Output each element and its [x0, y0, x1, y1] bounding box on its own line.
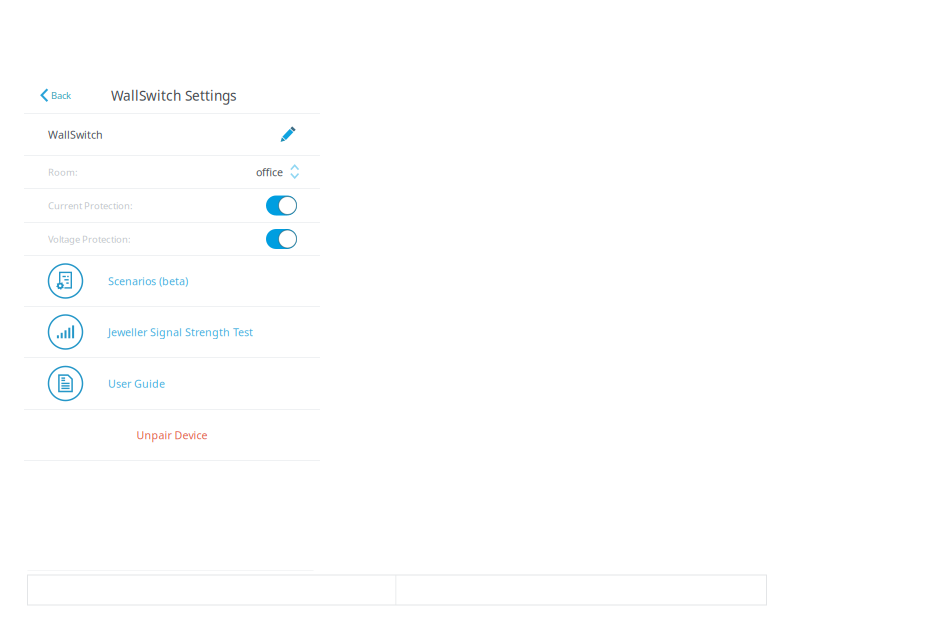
staticText: Scenarios (beta)	[108, 274, 188, 288]
button[interactable]: Room:	[24, 156, 320, 188]
staticText: Voltage Protection:	[48, 233, 131, 245]
staticText: Back	[51, 89, 71, 102]
button[interactable]: Back	[24, 78, 77, 112]
button[interactable]: Voltage Protection:	[24, 223, 320, 255]
staticText: Jeweller Signal Strength Test	[108, 325, 253, 339]
staticText: WallSwitch Settings	[111, 86, 237, 105]
button[interactable]: User Guide	[24, 358, 320, 409]
staticText: WallSwitch	[48, 127, 103, 142]
button[interactable]: Jeweller Signal Strength Test	[24, 307, 320, 357]
button[interactable]: Current Protection:	[24, 189, 320, 222]
button[interactable]: Scenarios (beta)	[24, 256, 320, 306]
staticText: Unpair Device	[136, 428, 207, 442]
button[interactable]: Unpair Device	[24, 410, 320, 460]
staticText: User Guide	[108, 376, 165, 391]
button[interactable]: Rename device	[279, 125, 297, 143]
staticText: Current Protection:	[48, 199, 133, 212]
staticText: Room:	[48, 166, 78, 178]
staticText: office	[256, 165, 283, 179]
